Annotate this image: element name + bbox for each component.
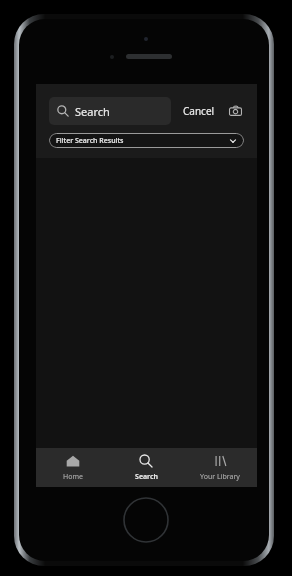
staticText: Cancel: [183, 104, 215, 118]
button[interactable]: Search: [49, 97, 171, 125]
button[interactable]: Search by camera: [226, 102, 244, 120]
staticText: Search: [75, 104, 110, 119]
button[interactable]: Home: [36, 448, 109, 487]
button[interactable]: Your Library: [183, 448, 257, 487]
button[interactable]: Search: [109, 448, 183, 487]
staticText: Search: [135, 472, 158, 482]
button[interactable]: Cancel: [181, 100, 217, 122]
button[interactable]: Filter Search Results: [49, 133, 244, 148]
staticText: Your Library: [200, 472, 240, 482]
staticText: Home: [63, 472, 83, 482]
staticText: Filter Search Results: [56, 136, 229, 146]
